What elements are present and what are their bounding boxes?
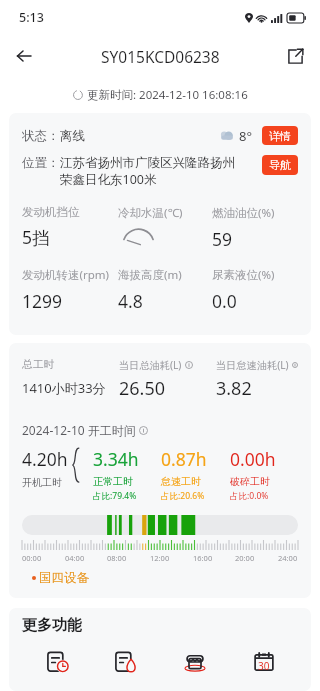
staticText: 00:00	[22, 553, 42, 563]
staticText: 2024-12-10 开工时间	[22, 422, 136, 438]
staticText: 状态：	[22, 128, 60, 144]
staticText: 当日总油耗(L)	[119, 358, 182, 372]
staticText: 8°	[239, 127, 253, 145]
staticText: 导航	[269, 158, 291, 172]
button[interactable]: 导航	[262, 155, 298, 175]
staticText: 5:13	[19, 9, 44, 26]
staticText: 占比:79.4%	[93, 490, 137, 502]
staticText: 海拔高度(m)	[118, 267, 182, 283]
staticText: 0.00h	[230, 447, 276, 471]
staticText: 16:00	[193, 553, 213, 563]
staticText: 开机工时	[22, 476, 62, 489]
staticText: 1299	[22, 289, 63, 311]
staticText: 怠速工时	[161, 475, 201, 488]
staticText: 燃油油位(%)	[212, 205, 275, 221]
staticText: 冷却水温(℃)	[118, 205, 183, 221]
staticText: 荣鑫日化东100米	[60, 171, 157, 188]
staticText: 江苏省扬州市广陵区兴隆路扬州	[60, 155, 235, 171]
staticText: 尿素液位(%)	[212, 267, 275, 283]
staticText: 0.0	[212, 289, 237, 311]
staticText: 24:00	[278, 553, 298, 563]
button[interactable]: Back	[8, 40, 40, 72]
staticText: 08:00	[107, 553, 127, 563]
staticText: 4.20h	[22, 447, 68, 471]
staticText: 占比:0.0%	[230, 490, 269, 502]
staticText: 0.87h	[161, 447, 207, 471]
staticText: 1410小时33分	[22, 379, 106, 397]
button[interactable]: Calendar	[229, 647, 298, 677]
staticText: 当日怠速油耗(L)	[216, 358, 289, 372]
staticText: 位置：	[22, 155, 60, 171]
staticText: 30	[258, 659, 270, 673]
staticText: 更新时间: 2024-12-10 16:08:16	[87, 87, 248, 103]
staticText: 59	[212, 227, 233, 249]
button[interactable]: Bucket work	[160, 647, 229, 677]
staticText: 详情	[269, 129, 291, 142]
button[interactable]: Work hours report	[24, 647, 92, 677]
staticText: 更多功能	[22, 616, 82, 635]
button[interactable]: Fuel report	[92, 647, 160, 677]
staticText: SY015KCD06238	[101, 46, 220, 67]
staticText: 总工时	[22, 358, 55, 371]
staticText: 破碎工时	[230, 475, 270, 488]
staticText: 国四设备	[39, 570, 89, 586]
staticText: 正常工时	[93, 475, 133, 488]
staticText: 5挡	[22, 225, 50, 247]
staticText: 04:00	[65, 553, 85, 563]
staticText: 12:00	[150, 553, 170, 563]
staticText: 离线	[60, 128, 85, 144]
staticText: 3.34h	[93, 447, 139, 471]
staticText: 20:00	[235, 553, 255, 563]
staticText: 发动机挡位	[22, 205, 80, 219]
staticText: 4.8	[118, 289, 143, 311]
staticText: 占比:20.6%	[161, 490, 205, 502]
staticText: 26.50	[119, 376, 166, 401]
staticText: 3.82	[216, 376, 252, 401]
staticText: 发动机转速(rpm)	[22, 267, 109, 283]
button[interactable]: Share	[280, 41, 310, 71]
button[interactable]: 详情	[262, 126, 298, 145]
